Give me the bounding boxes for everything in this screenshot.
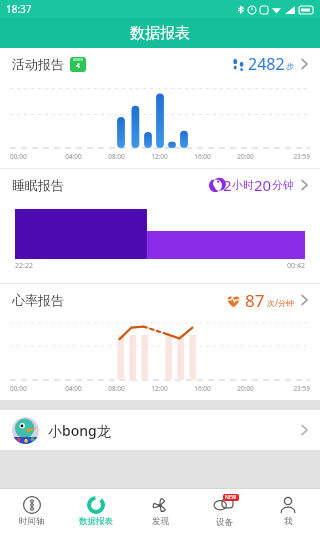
staticText: 00:42 bbox=[287, 261, 305, 271]
staticText: 时间轴 bbox=[19, 516, 45, 527]
button[interactable]: 睡眠报告 bbox=[0, 169, 320, 201]
staticText: 2 bbox=[223, 175, 232, 195]
staticText: 4 bbox=[76, 61, 81, 71]
staticText: 步 bbox=[286, 61, 294, 71]
button[interactable]: 发现 bbox=[128, 489, 192, 533]
staticText: 23:59 bbox=[267, 152, 310, 161]
staticText: 08:00 bbox=[95, 152, 138, 161]
staticText: 设备 bbox=[216, 517, 233, 528]
staticText: 04:00 bbox=[52, 384, 95, 393]
button[interactable]: 小bong龙 bbox=[0, 410, 320, 450]
staticText: 睡眠报告 bbox=[12, 177, 64, 193]
staticText: 20:00 bbox=[224, 152, 267, 161]
staticText: 00:00 bbox=[10, 384, 52, 393]
staticText: 次/分钟 bbox=[267, 297, 294, 308]
staticText: 分钟 bbox=[272, 178, 294, 192]
staticText: 发现 bbox=[152, 516, 169, 527]
staticText: 我 bbox=[284, 516, 293, 527]
staticText: 活动报告 bbox=[12, 56, 64, 72]
staticText: 04:00 bbox=[52, 152, 95, 161]
button[interactable]: 时间轴 bbox=[0, 489, 64, 533]
staticText: 12:00 bbox=[138, 152, 181, 161]
staticText: 12:00 bbox=[138, 384, 181, 393]
button[interactable]: 设备 bbox=[192, 489, 256, 533]
staticText: 16:00 bbox=[181, 384, 224, 393]
button[interactable]: 数据报表 bbox=[64, 489, 128, 533]
staticText: 小时 bbox=[232, 178, 254, 192]
staticText: 数据报表 bbox=[79, 516, 113, 527]
staticText: 心率报告 bbox=[12, 292, 64, 308]
staticText: 小bong龙 bbox=[48, 421, 111, 440]
staticText: 22:22 bbox=[15, 261, 33, 271]
staticText: 08:00 bbox=[95, 384, 138, 393]
button[interactable]: 心率报告 bbox=[0, 284, 320, 316]
staticText: 23:59 bbox=[267, 384, 310, 393]
staticText: 20:00 bbox=[224, 384, 267, 393]
staticText: NEW bbox=[225, 494, 237, 501]
staticText: 16:00 bbox=[181, 152, 224, 161]
staticText: 2482 bbox=[248, 53, 285, 75]
button[interactable]: 活动报告 bbox=[0, 48, 320, 80]
staticText: 00:00 bbox=[10, 152, 52, 161]
staticText: 20 bbox=[254, 175, 272, 195]
staticText: 87 bbox=[245, 289, 265, 312]
button[interactable]: 我 bbox=[256, 489, 320, 533]
staticText: 数据报表 bbox=[130, 24, 190, 43]
staticText: 18:37 bbox=[6, 2, 32, 16]
